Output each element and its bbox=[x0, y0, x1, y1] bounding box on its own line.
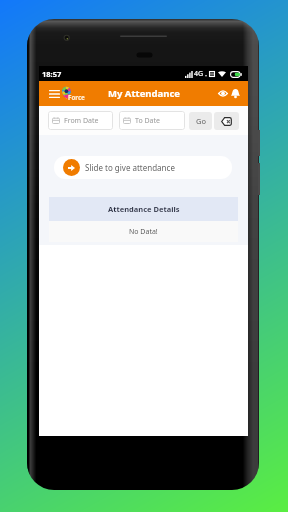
button[interactable]: To Date bbox=[119, 111, 185, 130]
staticText: To Date bbox=[135, 116, 160, 126]
staticText: My Attendance bbox=[108, 87, 180, 100]
staticText: 4G bbox=[194, 69, 204, 79]
staticText: Attendance Details bbox=[108, 204, 180, 214]
button[interactable]: Notifications bbox=[230, 87, 241, 100]
staticText: Force bbox=[68, 93, 85, 101]
staticText: No Data! bbox=[129, 227, 158, 237]
button[interactable]: Go bbox=[189, 112, 212, 130]
button[interactable]: Slide to give attendance bbox=[54, 156, 232, 179]
button[interactable]: Clear dates bbox=[214, 112, 239, 130]
button[interactable]: Preview bbox=[217, 87, 229, 100]
staticText: 18:57 bbox=[42, 69, 62, 79]
staticText: Go bbox=[196, 116, 206, 126]
button[interactable]: From Date bbox=[48, 111, 113, 130]
staticText: From Date bbox=[64, 116, 99, 126]
staticText: Slide to give attendance bbox=[85, 162, 175, 173]
button[interactable]: Open navigation menu bbox=[47, 86, 62, 102]
